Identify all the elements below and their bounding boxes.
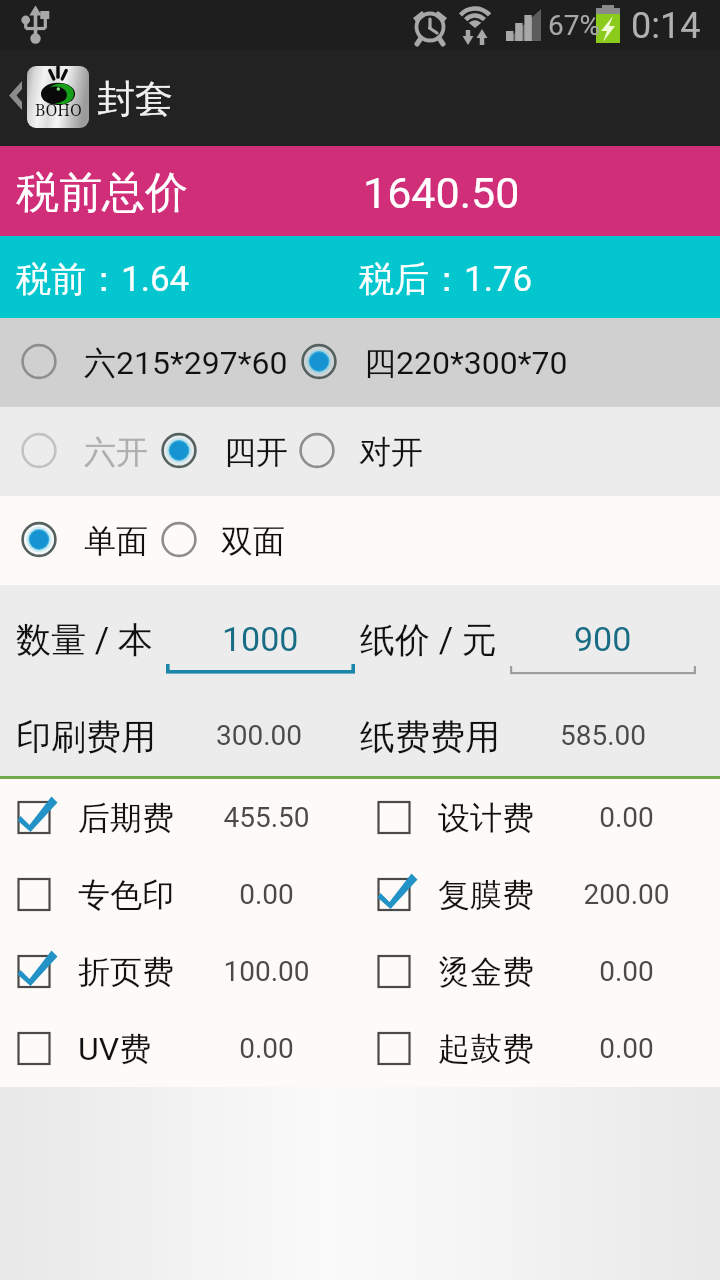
staticText: 起鼓费 [438,1029,534,1069]
staticText: 0.00 [599,1032,654,1065]
staticText: 0.00 [599,955,654,988]
button[interactable]: 四开 [159,417,290,487]
button[interactable]: 1000 [166,613,355,673]
staticText: 900 [574,619,632,659]
staticText: 1640.50 [363,168,520,218]
staticText: 585.00 [560,719,647,752]
staticText: 后期费 [78,798,174,838]
staticText: 双面 [221,521,285,561]
button[interactable]: 六215*297*60 [19,328,292,398]
button[interactable]: 900 [510,613,696,673]
staticText: 复膜费 [438,875,534,915]
staticText: 67% [548,9,600,42]
staticText: 数量 / 本 [16,618,153,662]
staticText: 0:14 [631,5,701,47]
button[interactable]: 六开 [19,417,150,487]
staticText: 455.50 [223,801,310,834]
staticText: 税后：1.76 [359,257,533,301]
staticText: 纸价 / 元 [360,618,497,662]
staticText: 四220*300*70 [364,343,568,383]
staticText: 纸费费用 [360,715,500,759]
button[interactable]: 折页费 [0,933,360,1010]
staticText: 0.00 [239,878,294,911]
staticText: 专色印 [78,875,174,915]
staticText: 1000 [222,619,299,659]
staticText: 对开 [359,432,423,472]
staticText: 0.00 [599,801,654,834]
button[interactable]: 复膜费 [360,856,720,933]
button[interactable]: Back [0,50,92,146]
staticText: 封套 [97,75,173,123]
button[interactable]: 专色印 [0,856,360,933]
staticText: 四开 [224,432,288,472]
staticText: 单面 [84,521,148,561]
staticText: 200.00 [583,878,670,911]
staticText: 印刷费用 [16,715,156,759]
staticText: 烫金费 [438,952,534,992]
staticText: 0.00 [239,1032,294,1065]
staticText: 税前：1.64 [16,257,190,301]
staticText: 100.00 [223,955,310,988]
button[interactable]: UV费 [0,1010,360,1087]
button[interactable]: 四220*300*70 [299,328,572,398]
staticText: 折页费 [78,952,174,992]
staticText: 六开 [84,432,148,472]
button[interactable]: 单面 [19,506,150,576]
button[interactable]: 烫金费 [360,933,720,1010]
button[interactable]: 设计费 [360,779,720,856]
button[interactable]: 后期费 [0,779,360,856]
button[interactable]: 双面 [159,506,287,576]
staticText: 税前总价 [16,166,188,220]
staticText: UV费 [78,1029,152,1069]
staticText: 六215*297*60 [84,343,288,383]
button[interactable]: 对开 [297,417,425,487]
button[interactable]: 起鼓费 [360,1010,720,1087]
staticText: BOHO [35,99,82,121]
staticText: 设计费 [438,798,534,838]
staticText: 300.00 [216,719,303,752]
